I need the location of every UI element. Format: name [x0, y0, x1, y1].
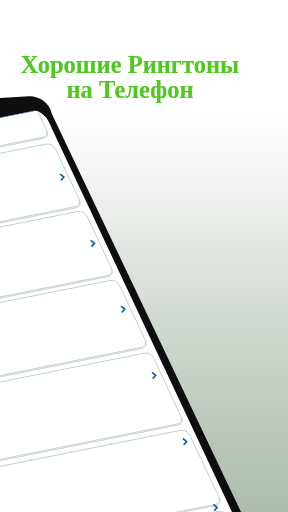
staticText: Хорошие Рингтоны на Телефон [10, 51, 250, 103]
